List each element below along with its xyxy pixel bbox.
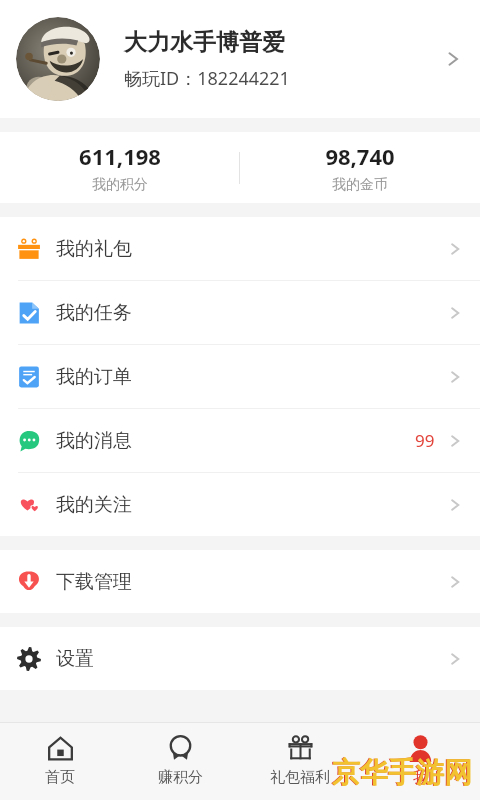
- staticText: 99: [415, 429, 435, 452]
- button[interactable]: 我: [360, 722, 480, 800]
- staticText: 设置: [56, 647, 94, 671]
- staticText: 我的关注: [56, 493, 132, 517]
- other: 首页: [47, 735, 74, 762]
- staticText: 首页: [45, 768, 75, 787]
- button[interactable]: 大力水手博普爱: [0, 0, 480, 118]
- button[interactable]: 我的消息: [0, 409, 480, 472]
- staticText: 我的积分: [92, 176, 148, 194]
- button[interactable]: 设置: [0, 627, 480, 690]
- staticText: 我: [413, 768, 428, 787]
- other: 赚积分: [167, 735, 194, 762]
- button[interactable]: 首页: [0, 722, 120, 800]
- button[interactable]: 我的关注: [0, 473, 480, 536]
- staticText: 礼包福利: [270, 768, 330, 787]
- other: 我: [407, 735, 434, 762]
- staticText: 京华手游网: [331, 755, 471, 790]
- staticText: 我的任务: [56, 301, 132, 325]
- staticText: 大力水手博普爱: [124, 28, 285, 57]
- staticText: 畅玩ID：182244221: [124, 66, 290, 91]
- staticText: 98,740: [325, 141, 395, 171]
- button[interactable]: 我的订单: [0, 345, 480, 408]
- staticText: 我的金币: [332, 176, 388, 194]
- button[interactable]: 我的礼包: [0, 217, 480, 280]
- staticText: 611,198: [79, 141, 161, 171]
- button[interactable]: 我的任务: [0, 281, 480, 344]
- button[interactable]: 下载管理: [0, 550, 480, 613]
- staticText: 下载管理: [56, 570, 132, 594]
- button[interactable]: 赚积分: [120, 722, 240, 800]
- other: 礼包福利: [287, 735, 314, 762]
- staticText: 我的订单: [56, 365, 132, 389]
- staticText: 我的消息: [56, 429, 132, 453]
- staticText: 赚积分: [158, 768, 203, 787]
- button[interactable]: 98,740: [240, 141, 480, 194]
- button[interactable]: 611,198: [0, 141, 239, 194]
- staticText: 我的礼包: [56, 237, 132, 261]
- staticText: 京华手游网: [332, 755, 472, 790]
- button[interactable]: 礼包福利: [240, 722, 360, 800]
